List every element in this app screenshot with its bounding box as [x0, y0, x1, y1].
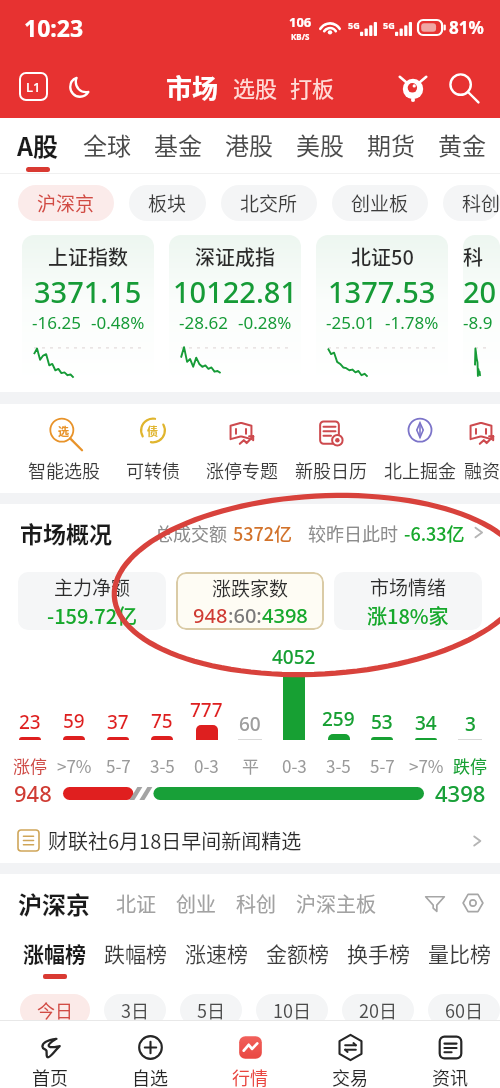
staticText: 金额榜: [266, 938, 329, 968]
button[interactable]: 科创板: [443, 185, 500, 221]
staticText: 科创: [236, 889, 276, 918]
staticText: 59: [63, 708, 85, 734]
staticText: 5-7: [370, 753, 395, 778]
button[interactable]: 债: [108, 415, 197, 483]
button[interactable]: 涨跌家数: [176, 572, 324, 630]
staticText: 跌停: [453, 753, 487, 778]
button[interactable]: 北证: [106, 889, 166, 918]
button[interactable]: 沪深京: [18, 886, 90, 921]
staticText: 选: [58, 423, 69, 439]
staticText: 53: [371, 709, 393, 735]
staticText: :60:: [228, 602, 262, 629]
button[interactable]: 科创50: [463, 235, 500, 383]
button[interactable]: 新股日历: [286, 415, 375, 483]
button[interactable]: 20日: [342, 994, 414, 1026]
button[interactable]: Filter: [422, 890, 448, 916]
staticText: 2024.61: [463, 272, 500, 311]
button[interactable]: 沪深京: [18, 185, 114, 221]
staticText: 106: [289, 13, 312, 31]
button[interactable]: 跌幅榜: [104, 932, 167, 979]
staticText: 科创50: [463, 242, 500, 271]
button[interactable]: 涨速榜: [185, 932, 248, 979]
button[interactable]: 上证指数: [22, 235, 154, 383]
button[interactable]: 选股: [233, 71, 278, 103]
staticText: 北证50: [351, 242, 414, 271]
button[interactable]: 美股: [284, 118, 355, 174]
button[interactable]: 涨幅榜: [23, 932, 86, 979]
button[interactable]: A股: [5, 118, 71, 174]
staticText: 沪深京: [18, 886, 90, 921]
button[interactable]: 主力净额: [18, 572, 166, 630]
staticText: 选股: [233, 71, 278, 103]
staticText: 10:23: [24, 12, 84, 43]
button[interactable]: 北上掘金: [375, 415, 464, 483]
button[interactable]: 打板: [290, 71, 335, 103]
button[interactable]: 北证50: [316, 235, 448, 383]
button[interactable]: 首页: [0, 1021, 100, 1088]
button[interactable]: 基金: [142, 118, 213, 174]
button[interactable]: 期货: [355, 118, 426, 174]
staticText: 涨幅榜: [23, 938, 86, 968]
staticText: KB/S: [291, 31, 310, 42]
button[interactable]: 涨停专题: [197, 415, 286, 483]
staticText: 创业板: [351, 189, 409, 217]
staticText: >7%: [409, 753, 444, 778]
staticText: 5日: [197, 997, 225, 1023]
button[interactable]: 交易: [300, 1021, 400, 1088]
button[interactable]: 创业板: [332, 185, 428, 221]
staticText: 可转债: [126, 457, 180, 483]
staticText: 交易: [332, 1064, 368, 1088]
staticText: 60日: [445, 997, 483, 1023]
staticText: 5G: [348, 19, 360, 31]
button[interactable]: Alerts: [396, 70, 430, 104]
button[interactable]: 市场情绪: [334, 572, 482, 630]
button[interactable]: 市场: [166, 68, 219, 106]
button[interactable]: 港股: [213, 118, 284, 174]
button[interactable]: Level 1 quotes: [20, 73, 47, 100]
staticText: 948: [193, 602, 228, 629]
staticText: 资讯: [432, 1064, 468, 1088]
button[interactable]: 资讯: [400, 1021, 500, 1088]
button[interactable]: 市场概况: [20, 516, 486, 549]
staticText: 沪深主板: [296, 889, 376, 918]
staticText: 科创板: [462, 189, 481, 217]
button[interactable]: 科创: [226, 889, 286, 918]
staticText: 涨速榜: [185, 938, 248, 968]
staticText: 较昨日此时: [308, 520, 398, 546]
button[interactable]: 沪深主板: [286, 889, 386, 918]
button[interactable]: 金额榜: [266, 932, 329, 979]
button[interactable]: 10日: [256, 994, 328, 1026]
button[interactable]: 自选: [100, 1021, 200, 1088]
staticText: 债: [147, 423, 158, 439]
button[interactable]: 创业: [166, 889, 226, 918]
button[interactable]: 行情: [200, 1021, 300, 1088]
staticText: 0-3: [282, 753, 307, 778]
staticText: 美股: [296, 127, 344, 162]
button[interactable]: 融资: [464, 415, 500, 483]
button[interactable]: Settings: [460, 890, 486, 916]
button[interactable]: 板块: [129, 185, 206, 221]
button[interactable]: 北交所: [221, 185, 317, 221]
button[interactable]: 60日: [428, 994, 500, 1026]
staticText: 3日: [121, 997, 149, 1023]
staticText: 3-5: [150, 753, 175, 778]
staticText: 基金: [154, 127, 202, 162]
button[interactable]: 财联社6月18日早间新闻精选: [18, 818, 484, 863]
button[interactable]: Night mode: [67, 73, 94, 100]
button[interactable]: 全球: [71, 118, 142, 174]
staticText: 34: [415, 710, 437, 736]
button[interactable]: 选: [19, 415, 108, 483]
staticText: A股: [17, 127, 59, 163]
staticText: 打板: [290, 71, 335, 103]
button[interactable]: 今日: [20, 994, 90, 1026]
staticText: -28.62: [179, 311, 228, 334]
button[interactable]: 量比榜: [428, 932, 491, 979]
button[interactable]: 5日: [180, 994, 242, 1026]
staticText: 主力净额: [54, 573, 131, 601]
button[interactable]: 黄金: [426, 118, 497, 174]
button[interactable]: Search: [446, 70, 480, 104]
button[interactable]: 深证成指: [169, 235, 301, 383]
staticText: 新股日历: [295, 457, 367, 483]
button[interactable]: 3日: [104, 994, 166, 1026]
button[interactable]: 换手榜: [347, 932, 410, 979]
